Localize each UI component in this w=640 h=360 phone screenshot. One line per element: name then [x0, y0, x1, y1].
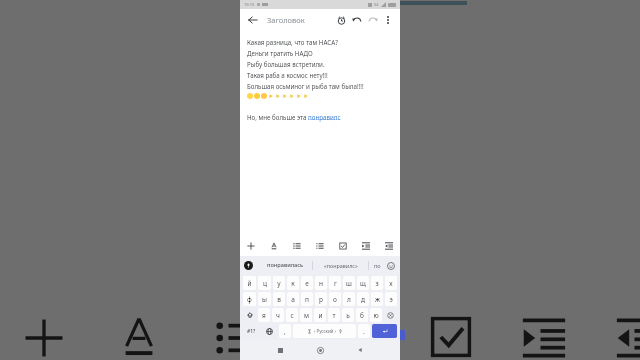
button[interactable]: с	[286, 308, 298, 322]
button[interactable]: ж	[371, 292, 383, 306]
button[interactable]: понравилась	[258, 261, 312, 269]
staticText: м	[304, 311, 309, 320]
button[interactable]: ф	[243, 292, 256, 306]
button[interactable]: Backspace	[384, 308, 397, 322]
button[interactable]: г	[329, 276, 341, 290]
button[interactable]: щ	[357, 276, 369, 290]
button[interactable]: и	[314, 308, 326, 322]
button[interactable]: о	[329, 292, 341, 306]
staticText: с	[290, 311, 294, 320]
staticText: х	[389, 279, 393, 288]
staticText: г	[334, 279, 337, 288]
staticText: р	[319, 295, 323, 304]
button[interactable]: в	[273, 292, 285, 306]
button[interactable]: ы	[258, 292, 271, 306]
staticText: э	[389, 295, 393, 304]
staticText: у	[277, 279, 281, 288]
staticText: Рыбу большая встретили.	[247, 60, 325, 68]
button[interactable]: ш	[343, 276, 355, 290]
button[interactable]: р	[315, 292, 327, 306]
button[interactable]: #1?	[243, 324, 260, 338]
button[interactable]: Redo	[365, 12, 381, 28]
staticText: ф	[247, 295, 252, 304]
button[interactable]: «понравилс»	[313, 262, 368, 269]
staticText: 19:15	[244, 2, 255, 7]
staticText: н	[319, 279, 323, 288]
staticText: .	[363, 327, 365, 336]
button[interactable]: по	[369, 262, 385, 269]
staticText: з	[375, 279, 379, 288]
button[interactable]: Bulleted list	[285, 236, 308, 256]
button[interactable]: з	[371, 276, 383, 290]
staticText: ж	[375, 295, 380, 304]
staticText: и	[318, 311, 323, 320]
button[interactable]: Indent	[354, 236, 377, 256]
staticText: понравилась	[267, 261, 304, 269]
button[interactable]: ‹ Русский ›	[293, 324, 356, 338]
button[interactable]: н	[315, 276, 327, 290]
staticText: #1?	[247, 328, 256, 335]
button[interactable]: я	[258, 308, 270, 322]
button[interactable]: э	[385, 292, 397, 306]
button[interactable]: Undo	[349, 12, 365, 28]
button[interactable]: .	[358, 324, 370, 338]
staticText: ь	[346, 311, 350, 320]
staticText: ю	[373, 311, 379, 320]
button[interactable]: д	[357, 292, 369, 306]
staticText: я	[262, 311, 266, 320]
staticText: ы	[262, 295, 267, 304]
staticText: в	[277, 295, 281, 304]
staticText: щ	[360, 279, 366, 288]
button[interactable]: Outdent	[377, 236, 400, 256]
button[interactable]: Recent apps	[260, 340, 300, 360]
staticText: 54	[374, 2, 379, 7]
button[interactable]: к	[287, 276, 299, 290]
staticText: а	[291, 295, 295, 304]
staticText: Деньги тратить НАДО	[247, 49, 313, 57]
button[interactable]: Emoji	[385, 260, 396, 271]
button[interactable]: Text format	[262, 236, 285, 256]
staticText: о	[333, 295, 337, 304]
staticText: ц	[263, 279, 267, 288]
button[interactable]: Voice typing	[244, 261, 253, 270]
button[interactable]: Back	[245, 12, 261, 28]
staticText: ‹ Русский ›	[314, 328, 336, 334]
button[interactable]: у	[273, 276, 285, 290]
button[interactable]: б	[356, 308, 368, 322]
button[interactable]: ц	[258, 276, 271, 290]
button[interactable]: т	[328, 308, 340, 322]
staticText: Но, мне больше эта	[247, 113, 308, 121]
staticText: ч	[276, 311, 280, 320]
button[interactable]: Numbered list	[308, 236, 331, 256]
button[interactable]: More options	[381, 13, 395, 27]
button[interactable]: х	[385, 276, 397, 290]
button[interactable]: Reminder	[333, 12, 349, 28]
button[interactable]: Add	[240, 236, 262, 256]
staticText: Такая раба а космос нету!!!	[247, 71, 328, 79]
button[interactable]: е	[301, 276, 313, 290]
button[interactable]: ь	[342, 308, 354, 322]
button[interactable]: ,	[279, 324, 291, 338]
staticText: Какая разница, что там НАСА?	[247, 38, 338, 46]
staticText: п	[305, 295, 309, 304]
button[interactable]: Back	[340, 340, 380, 360]
staticText: ш	[346, 279, 352, 288]
button[interactable]: Checklist	[331, 236, 354, 256]
staticText: й	[247, 279, 252, 288]
button[interactable]: м	[300, 308, 312, 322]
button[interactable]: Change keyboard	[262, 324, 277, 338]
button[interactable]: й	[243, 276, 256, 290]
button[interactable]: п	[301, 292, 313, 306]
button[interactable]: ч	[272, 308, 284, 322]
button[interactable]: Home	[300, 340, 340, 360]
staticText: понравилс	[308, 113, 341, 121]
button[interactable]: ю	[370, 308, 382, 322]
button[interactable]: Enter	[372, 324, 397, 338]
button[interactable]: л	[343, 292, 355, 306]
button[interactable]: Shift	[243, 308, 256, 322]
staticText: по	[374, 262, 381, 269]
button[interactable]: а	[287, 292, 299, 306]
staticText: Большая осьминог и рыба там была!!!!	[247, 82, 364, 90]
staticText: к	[291, 279, 295, 288]
staticText: т	[332, 311, 336, 320]
